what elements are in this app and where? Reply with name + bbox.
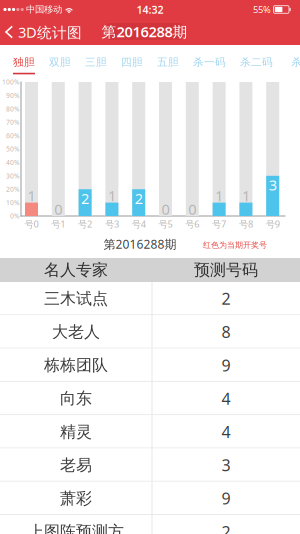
staticText: 号9	[266, 218, 280, 230]
staticText: 8	[221, 321, 230, 342]
staticText: 3	[269, 175, 277, 195]
staticText: 2	[135, 188, 143, 208]
staticText: 0	[161, 199, 169, 219]
button[interactable]: 栋栋团队	[0, 349, 300, 382]
staticText: 大老人	[52, 322, 100, 342]
staticText: 10%	[6, 198, 20, 207]
staticText: 杀	[291, 56, 300, 69]
staticText: 双胆	[49, 56, 71, 69]
button[interactable]: 精灵	[0, 415, 300, 448]
staticText: 1	[108, 186, 116, 205]
staticText: 1	[215, 186, 223, 205]
button[interactable]: 杀	[287, 48, 300, 74]
staticText: 三木试点	[44, 289, 108, 308]
staticText: 70%	[6, 118, 20, 127]
button[interactable]: 五胆	[157, 48, 179, 74]
staticText: 红色为当期开奖号	[203, 240, 267, 250]
staticText: 栋栋团队	[44, 355, 108, 375]
staticText: 杀一码	[193, 56, 226, 69]
staticText: 1	[242, 186, 250, 205]
staticText: 号6	[185, 218, 199, 230]
staticText: 四胆	[121, 56, 143, 69]
staticText: 2	[221, 288, 230, 309]
staticText: 50%	[6, 145, 20, 153]
button[interactable]: 独胆	[13, 48, 35, 74]
staticText: 0	[188, 199, 196, 219]
staticText: 三胆	[85, 56, 107, 69]
staticText: 预测号码	[194, 260, 258, 280]
staticText: 4	[221, 388, 230, 409]
staticText: 号3	[105, 218, 119, 230]
staticText: 向东	[60, 389, 92, 408]
staticText: 60%	[6, 131, 20, 140]
staticText: 90%	[6, 91, 20, 100]
staticText: 1	[27, 186, 35, 205]
staticText: 0	[54, 199, 62, 219]
staticText: 精灵	[60, 422, 92, 442]
staticText: 五胆	[157, 56, 179, 69]
staticText: 3D统计图	[18, 22, 82, 42]
staticText: 号8	[239, 218, 253, 230]
staticText: 30%	[6, 171, 20, 180]
staticText: 2	[221, 521, 230, 534]
button[interactable]: 杀二码	[240, 48, 273, 74]
staticText: 老易	[60, 455, 92, 475]
button[interactable]: 上图陈预测方	[0, 515, 300, 534]
staticText: 萧彩	[60, 489, 92, 508]
staticText: 第2016288期	[103, 236, 176, 252]
staticText: 独胆	[13, 56, 35, 69]
staticText: 号4	[132, 218, 146, 230]
button[interactable]: 三胆	[85, 48, 107, 74]
button[interactable]: 四胆	[121, 48, 143, 74]
staticText: 2	[81, 188, 89, 208]
button[interactable]: 3D统计图	[0, 18, 82, 46]
button[interactable]: 老易	[0, 448, 300, 482]
staticText: 55%	[253, 3, 271, 16]
staticText: 9	[221, 488, 230, 509]
staticText: 20%	[6, 185, 20, 194]
staticText: 100%	[2, 78, 20, 86]
staticText: 80%	[6, 104, 20, 113]
staticText: 上图陈预测方	[28, 522, 124, 534]
staticText: 号1	[51, 218, 65, 230]
staticText: 40%	[6, 158, 20, 167]
staticText: 4	[221, 421, 230, 442]
staticText: 0%	[10, 212, 20, 220]
staticText: 9	[221, 355, 230, 376]
button[interactable]: 双胆	[49, 48, 71, 74]
staticText: 杀二码	[240, 56, 273, 69]
staticText: 中国移动	[26, 4, 62, 15]
staticText: 号7	[212, 218, 226, 230]
staticText: 14:32	[136, 2, 163, 17]
button[interactable]: 萧彩	[0, 482, 300, 515]
staticText: 3	[221, 454, 230, 476]
staticText: 号5	[158, 218, 172, 230]
button[interactable]: 大老人	[0, 315, 300, 349]
staticText: 号2	[78, 218, 92, 230]
button[interactable]: 三木试点	[0, 282, 300, 315]
button[interactable]: 杀一码	[193, 48, 226, 74]
staticText: 第2016288期	[101, 22, 187, 41]
staticText: 号0	[24, 218, 38, 230]
staticText: 名人专家	[44, 260, 108, 280]
button[interactable]: 向东	[0, 382, 300, 415]
